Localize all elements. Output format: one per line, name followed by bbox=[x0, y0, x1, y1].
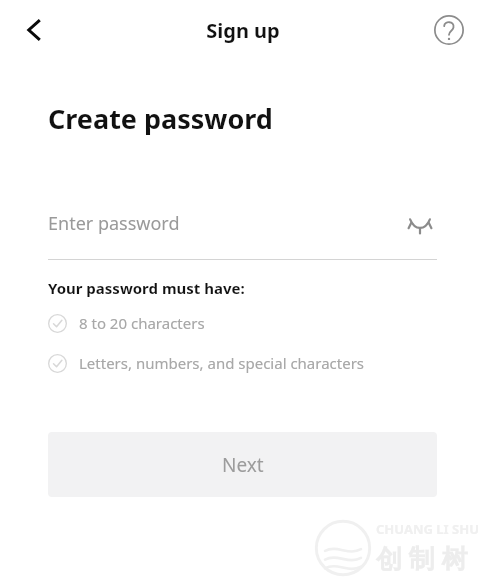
button[interactable]: Back bbox=[10, 6, 58, 54]
staticText: Sign up bbox=[206, 17, 280, 44]
staticText: 创 制 树 bbox=[376, 540, 468, 576]
staticText: Enter password bbox=[48, 211, 403, 236]
staticText: Next bbox=[222, 452, 264, 478]
staticText: Create password bbox=[48, 100, 273, 137]
staticText: Letters, numbers, and special characters bbox=[79, 353, 365, 373]
button[interactable]: Show password bbox=[403, 206, 437, 240]
staticText: Your password must have: bbox=[48, 278, 245, 298]
staticText: 8 to 20 characters bbox=[79, 313, 205, 333]
button[interactable]: Letters, numbers, and special characters bbox=[48, 350, 461, 376]
staticText: CHUANG LI SHU bbox=[376, 520, 479, 538]
button[interactable]: Help bbox=[427, 8, 471, 52]
button[interactable]: 8 to 20 characters bbox=[48, 310, 461, 336]
button[interactable]: Next bbox=[48, 432, 437, 497]
button[interactable]: Enter password bbox=[48, 203, 437, 243]
